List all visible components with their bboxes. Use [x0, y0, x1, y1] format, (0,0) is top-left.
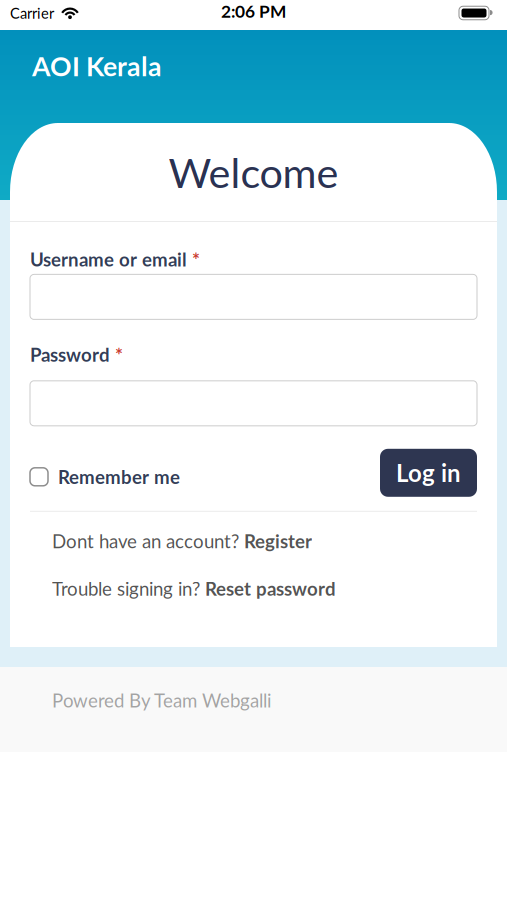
staticText: Password — [30, 343, 110, 366]
staticText: AOI Kerala — [32, 50, 162, 82]
staticText: Register — [244, 530, 312, 552]
staticText: Carrier — [10, 4, 54, 22]
staticText: Dont have an account? — [52, 530, 244, 552]
staticText: Remember me — [58, 466, 180, 488]
staticText: * — [110, 343, 123, 366]
button[interactable]: Register — [244, 530, 312, 552]
button[interactable]: Username or email — [30, 274, 477, 319]
staticText: Reset password — [205, 577, 336, 600]
staticText: Powered By Team Webgalli — [52, 689, 271, 711]
staticText: 2:06 PM — [221, 1, 286, 21]
staticText: Username or email — [30, 248, 187, 270]
staticText: Welcome — [168, 147, 338, 197]
button[interactable]: Password — [30, 381, 477, 426]
staticText: * — [187, 248, 200, 270]
button[interactable]: Log in — [380, 449, 477, 497]
button[interactable]: Reset password — [205, 577, 336, 600]
staticText: Log in — [396, 458, 461, 487]
staticText: Trouble signing in? — [52, 577, 205, 600]
button[interactable]: Remember me — [30, 466, 180, 488]
